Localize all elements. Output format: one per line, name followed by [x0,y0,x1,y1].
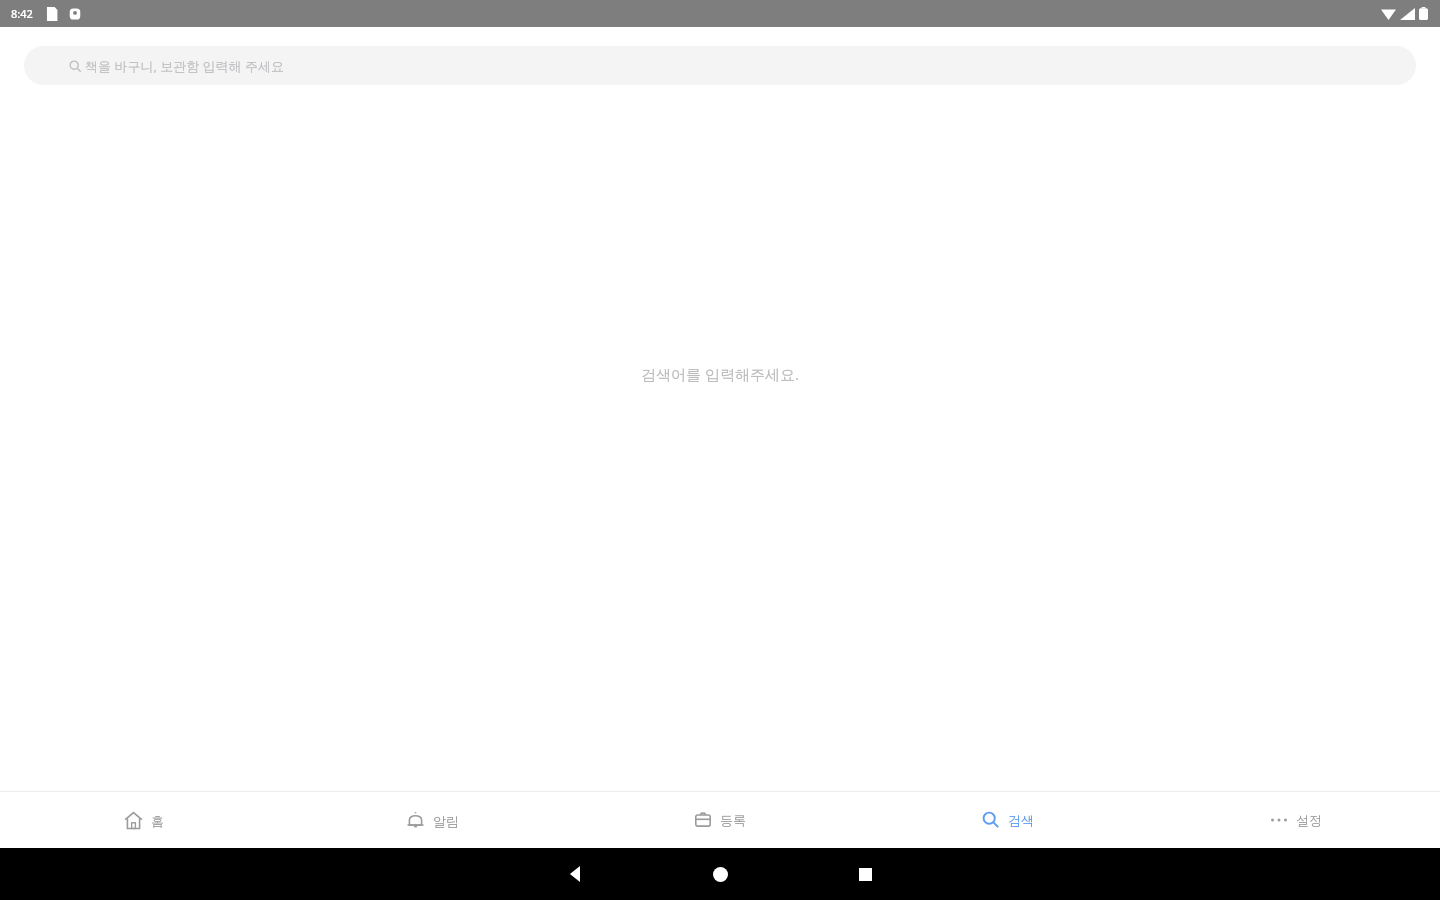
button[interactable]: Home [648,848,793,900]
button[interactable]: 설정 [1152,792,1440,848]
button[interactable]: 알림 [288,792,576,848]
staticText: 책을 바구니, 보관함 입력해 주세요 [85,57,285,75]
staticText: 검색 [1008,812,1034,828]
staticText: 검색어를 입력해주세요. [641,364,799,384]
button[interactable]: 등록 [576,792,864,848]
button[interactable]: Back [503,848,648,900]
button[interactable]: Recent apps [793,848,938,900]
staticText: 설정 [1296,812,1322,828]
button[interactable]: 홈 [0,792,288,848]
staticText: 알림 [433,813,459,829]
staticText: 등록 [720,812,746,828]
button[interactable]: 책을 바구니, 보관함 입력해 주세요 [24,46,1416,85]
staticText: 8:42 [11,6,33,21]
staticText: 홈 [151,813,164,829]
button[interactable]: 검색 [864,792,1152,848]
